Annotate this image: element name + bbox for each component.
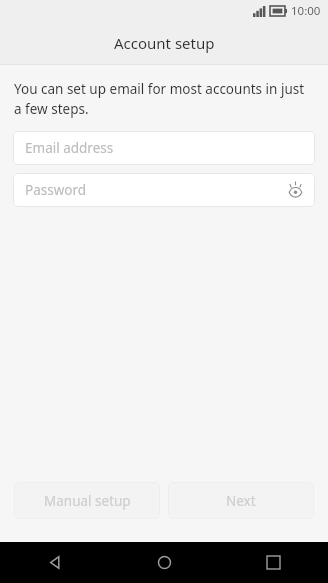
button[interactable]: Recent apps (219, 542, 328, 583)
staticText: 10:00 (291, 3, 321, 19)
staticText: Password (25, 181, 87, 199)
staticText: Next (226, 492, 256, 510)
button[interactable]: Password (13, 173, 315, 207)
button[interactable]: Next (168, 482, 314, 519)
button[interactable]: Show password (285, 180, 305, 200)
staticText: Email address (25, 139, 114, 157)
button[interactable]: Home (110, 542, 219, 583)
staticText: Manual setup (44, 492, 131, 510)
button[interactable]: Email address (13, 131, 315, 165)
staticText: Account setup (114, 33, 215, 53)
button[interactable]: Manual setup (14, 482, 160, 519)
button[interactable]: Back (0, 542, 110, 583)
staticText: You can set up email for most accounts i… (14, 80, 314, 118)
